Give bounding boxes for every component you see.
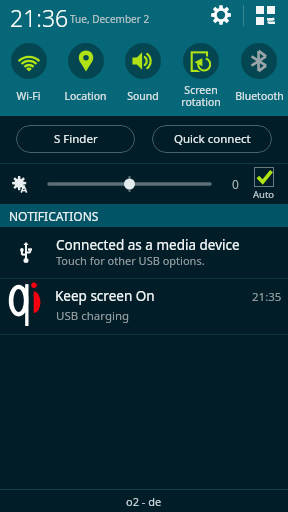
staticText: USB charging: [56, 308, 130, 324]
button[interactable]: Auto brightness: [11, 175, 29, 193]
staticText: S Finder: [54, 131, 98, 147]
button[interactable]: Screen rotation: [172, 43, 230, 108]
staticText: Bluetooth: [235, 89, 284, 103]
staticText: 21:36: [10, 2, 69, 33]
button[interactable]: Edit quick settings: [252, 2, 278, 28]
staticText: Screen rotation: [181, 83, 221, 108]
button[interactable]: Location: [57, 43, 114, 108]
staticText: Keep screen On: [55, 287, 155, 305]
staticText: Touch for other USB options.: [56, 253, 205, 268]
staticText: Connected as a media device: [56, 236, 240, 254]
button[interactable]: Wi-Fi: [0, 43, 57, 108]
button[interactable]: Bluetooth: [230, 43, 288, 108]
button[interactable]: S Finder: [16, 125, 135, 153]
staticText: Tue, December 2: [70, 12, 150, 26]
button[interactable]: Auto: [253, 167, 275, 201]
button[interactable]: Connected as a media device: [0, 227, 288, 278]
staticText: Auto: [253, 188, 275, 201]
staticText: NOTIFICATIONS: [9, 208, 99, 224]
staticText: Sound: [127, 89, 159, 103]
staticText: o2 - de: [126, 494, 162, 509]
staticText: Quick connect: [174, 131, 251, 147]
staticText: Location: [64, 89, 107, 103]
staticText: 0: [232, 176, 239, 192]
staticText: 21:35: [252, 289, 282, 305]
button[interactable]: Quick connect: [152, 125, 272, 153]
button[interactable]: Sound: [114, 43, 172, 108]
button[interactable]: Keep screen On: [0, 279, 288, 334]
button[interactable]: Settings: [208, 2, 234, 28]
staticText: Wi-Fi: [16, 89, 41, 103]
